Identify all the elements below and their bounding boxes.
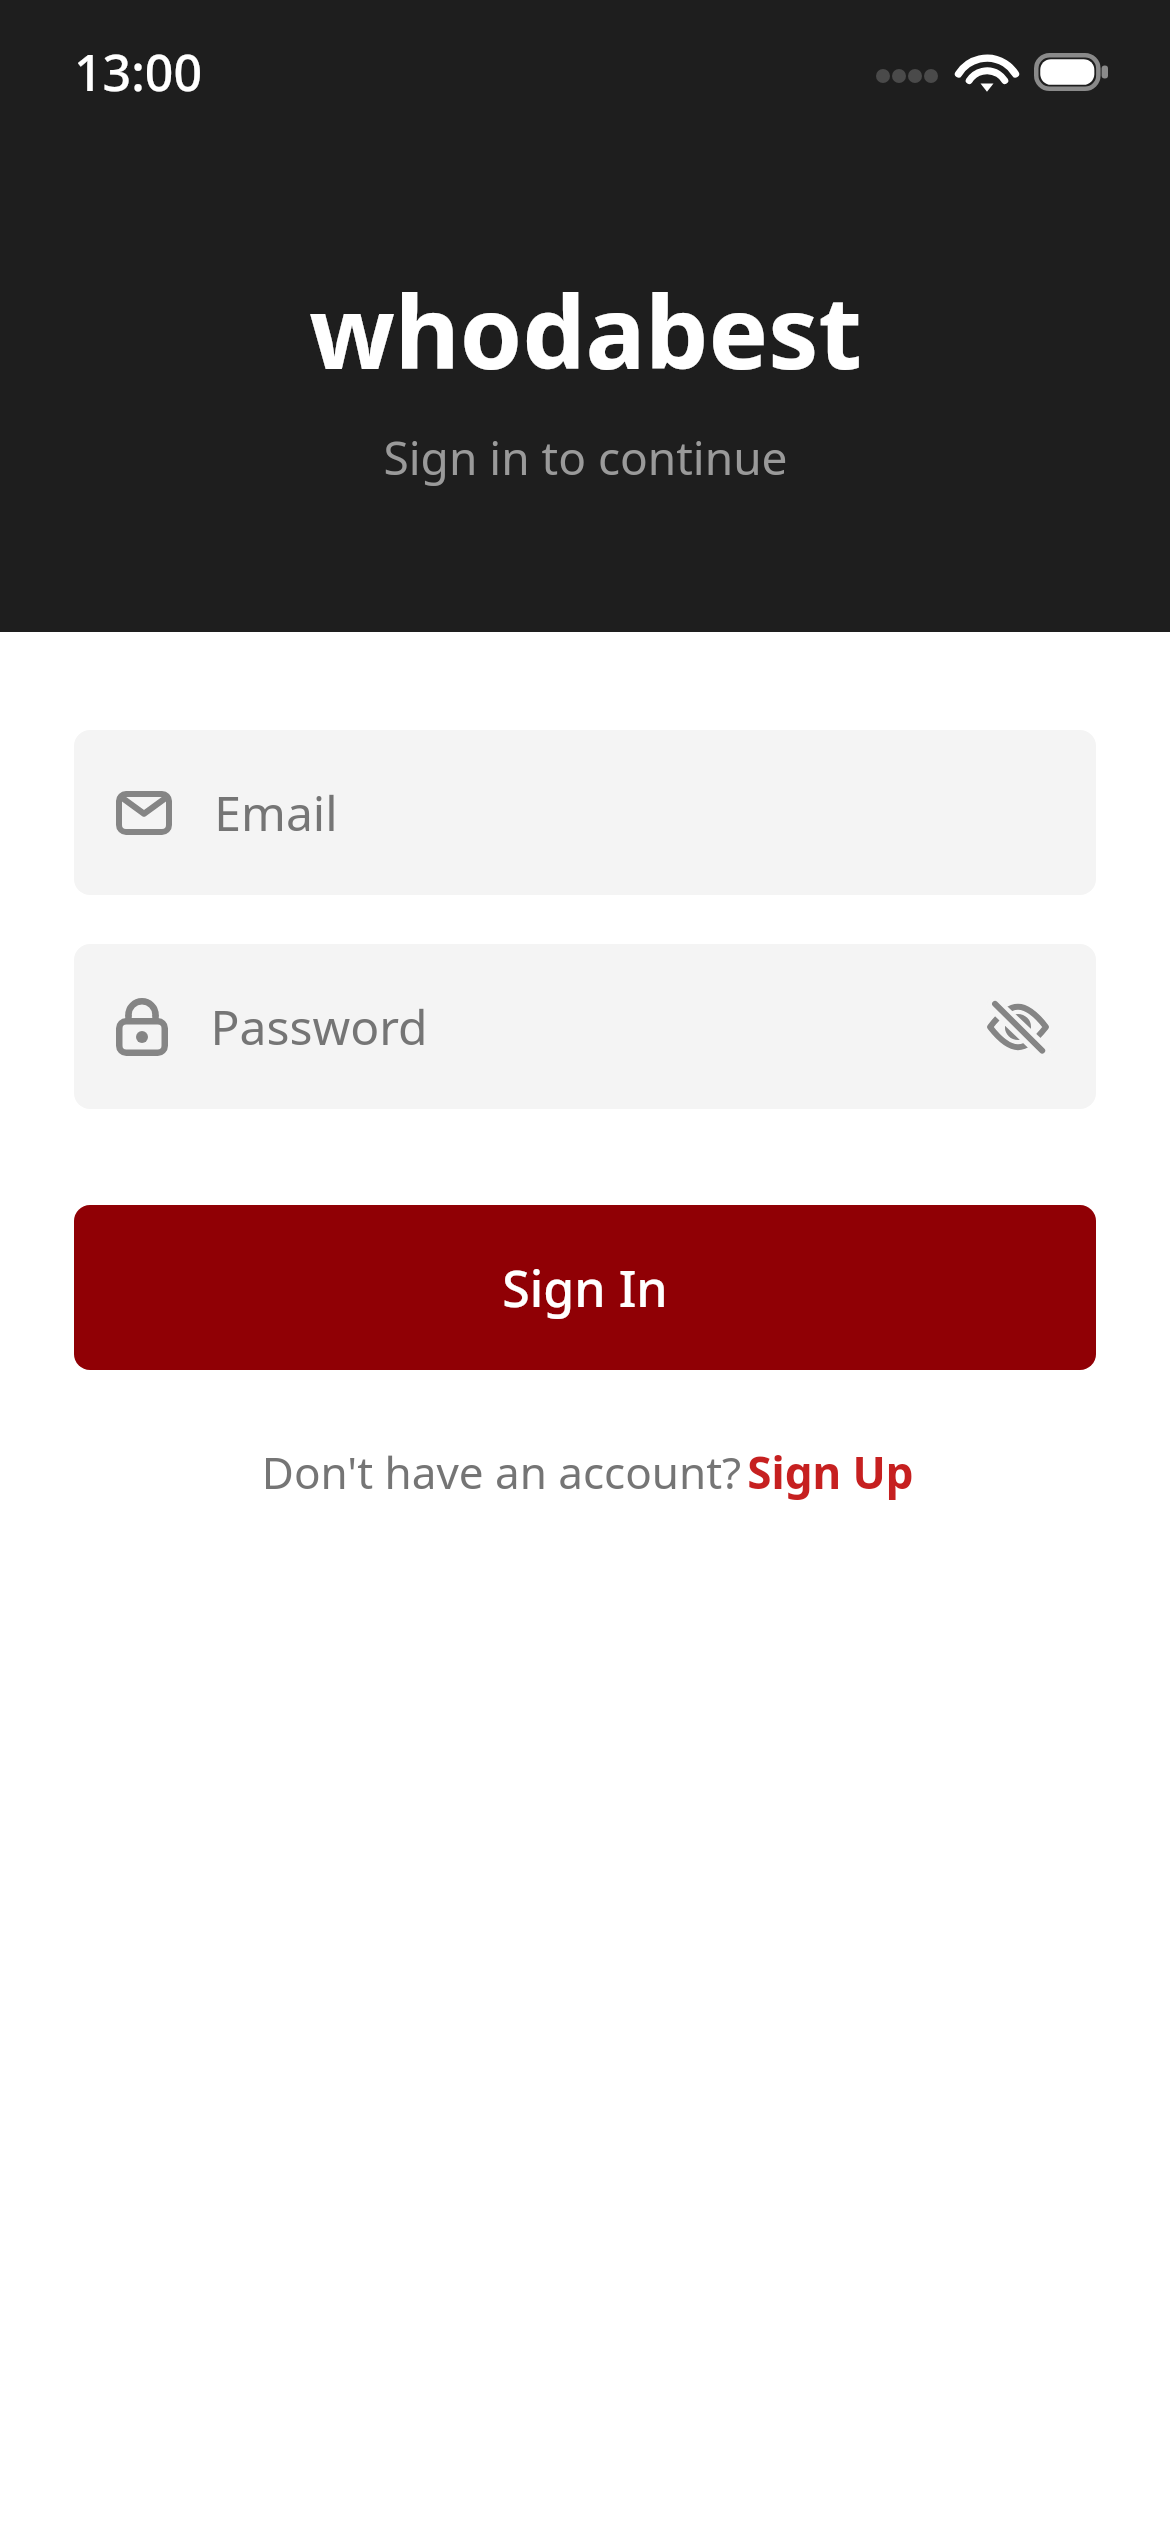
button[interactable]: Show password <box>976 985 1060 1069</box>
staticText: Sign Up <box>747 1442 914 1502</box>
staticText: Sign in to continue <box>383 426 788 489</box>
button[interactable]: Sign Up <box>747 1434 914 1510</box>
staticText: Sign In <box>502 1254 668 1322</box>
button[interactable]: Sign In <box>74 1205 1096 1370</box>
staticText: Password <box>210 994 428 1059</box>
button[interactable]: Password <box>74 944 1096 1109</box>
staticText: whodabest <box>309 262 862 398</box>
staticText: Don't have an account? <box>256 1442 747 1502</box>
staticText: Email <box>214 780 338 845</box>
button[interactable]: Email <box>74 730 1096 895</box>
staticText: 13:00 <box>74 38 202 106</box>
